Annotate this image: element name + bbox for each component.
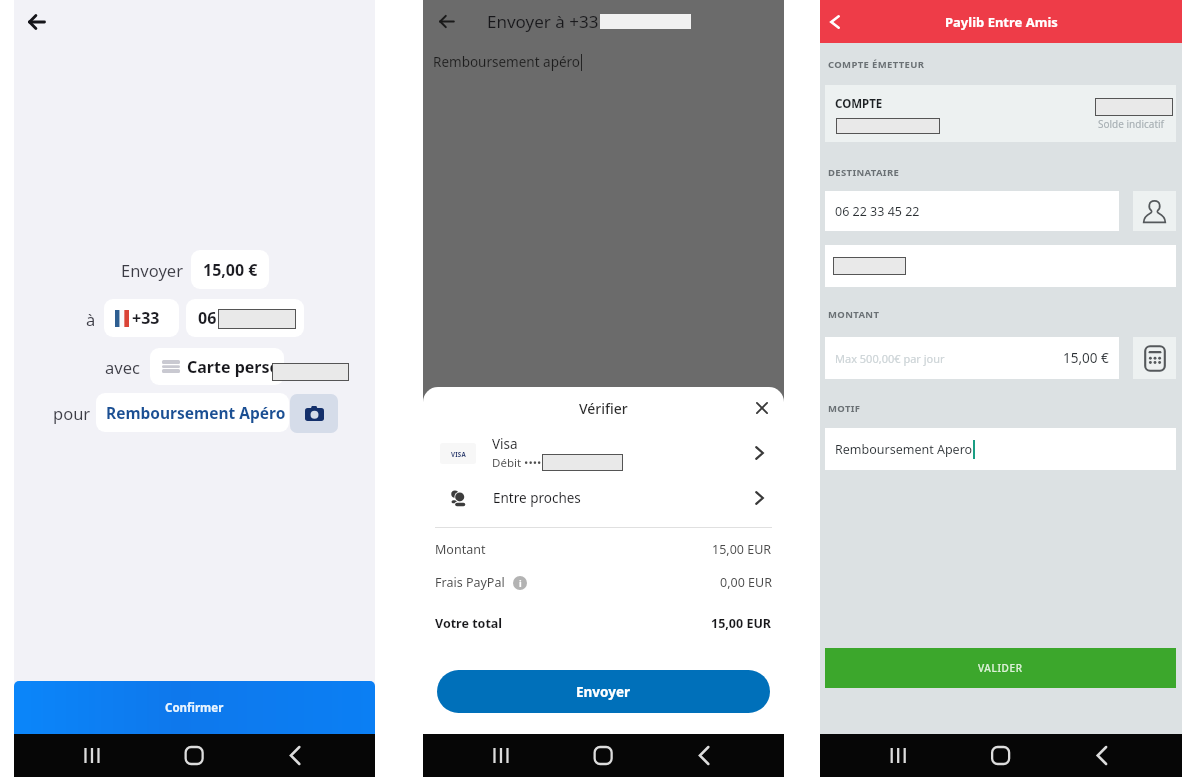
staticText: Visa	[492, 435, 518, 453]
staticText: i	[519, 577, 522, 589]
button[interactable]: Remboursement Apero	[825, 428, 1176, 470]
staticText: Carte perso	[187, 356, 272, 378]
staticText: 15,00 €	[203, 259, 258, 281]
staticText: Max 500,00€ par jour	[835, 351, 945, 366]
staticText: Entre proches	[493, 489, 581, 507]
staticText: Remboursement apéro	[433, 53, 581, 71]
staticText: avec	[105, 356, 140, 378]
button[interactable]: Camera	[290, 394, 338, 433]
button[interactable]: 15,00 €	[191, 250, 269, 289]
button[interactable]: 06 22 33 45 22	[825, 191, 1119, 231]
staticText: 15,00 EUR	[711, 615, 772, 632]
button[interactable]: Contacts	[1133, 191, 1176, 231]
button[interactable]: Back	[431, 6, 462, 36]
staticText: Envoyer	[121, 259, 183, 281]
staticText: pour	[53, 402, 91, 424]
staticText: Débit ••••	[492, 455, 542, 471]
button[interactable]: Carte perso	[150, 348, 284, 385]
staticText: 0,00 EUR	[720, 574, 772, 591]
staticText: MONTANT	[828, 308, 880, 321]
staticText: Vérifier	[579, 399, 628, 418]
button[interactable]: VISA	[423, 429, 784, 477]
staticText: COMPTE	[835, 96, 883, 112]
staticText: 15,00 €	[1063, 349, 1109, 367]
staticText: VISA	[451, 450, 466, 458]
button[interactable]: VALIDER	[825, 648, 1176, 688]
staticText: +33	[132, 307, 160, 329]
staticText: Remboursement Apero	[835, 441, 973, 458]
button[interactable]: Calculator	[1133, 337, 1176, 379]
button[interactable]: Envoyer	[437, 670, 770, 713]
staticText: MOTIF	[828, 402, 861, 415]
button[interactable]: Remboursement Apéro	[96, 393, 289, 432]
staticText: Envoyer à +33	[487, 10, 599, 33]
staticText: COMPTE ÉMETTEUR	[828, 58, 925, 71]
button[interactable]: COMPTE	[825, 85, 1176, 142]
staticText: 15,00 EUR	[712, 541, 772, 558]
staticText: 06 22 33 45 22	[835, 203, 920, 220]
staticText: Montant	[435, 541, 486, 558]
staticText: Remboursement Apéro	[106, 402, 279, 423]
button[interactable]: Back	[22, 7, 52, 37]
staticText: Solde indicatif	[1098, 117, 1165, 131]
button[interactable]: Confirmer	[14, 681, 375, 734]
button[interactable]: Max 500,00€ par jour	[825, 337, 1119, 379]
staticText: VALIDER	[978, 661, 1023, 675]
staticText: Frais PayPal	[435, 574, 505, 591]
staticText: 06	[198, 307, 217, 329]
staticText: Votre total	[435, 615, 503, 632]
staticText: DESTINATAIRE	[828, 166, 900, 179]
button[interactable]: Close	[749, 395, 775, 421]
button[interactable]: Entre proches	[423, 477, 784, 519]
button[interactable]: Back	[823, 0, 847, 43]
staticText: à	[86, 308, 96, 330]
button[interactable]	[825, 245, 1176, 287]
button[interactable]: 06	[186, 299, 304, 337]
staticText: Paylib Entre Amis	[945, 13, 1058, 31]
staticText: Confirmer	[165, 700, 224, 716]
button[interactable]: +33	[104, 299, 179, 337]
staticText: Envoyer	[576, 683, 631, 701]
